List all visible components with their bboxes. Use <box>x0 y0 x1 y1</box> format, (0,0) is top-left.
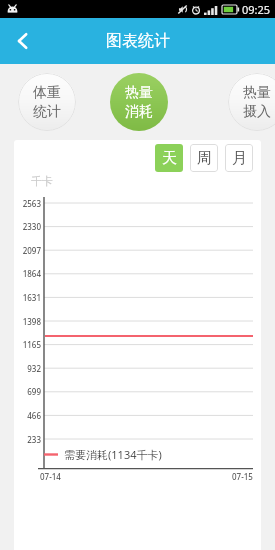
staticText: 需要消耗(1134千卡) <box>64 447 162 462</box>
staticText: 233 <box>14 434 41 445</box>
staticText: 2097 <box>14 245 41 256</box>
staticText: 699 <box>14 386 41 397</box>
staticText: 热量 <box>125 84 153 102</box>
button[interactable]: 周 <box>190 144 218 172</box>
staticText: 09:25 <box>242 2 271 17</box>
staticText: 2563 <box>14 198 41 209</box>
staticText: 消耗 <box>125 103 153 121</box>
staticText: 天 <box>162 149 177 168</box>
staticText: 932 <box>14 363 41 374</box>
button[interactable]: Back <box>0 18 46 64</box>
staticText: 热量 <box>243 84 271 102</box>
button[interactable]: 体重 <box>18 73 76 131</box>
button[interactable]: 热量 <box>228 73 275 131</box>
staticText: 2330 <box>14 221 41 232</box>
staticText: 466 <box>14 410 41 421</box>
staticText: 月 <box>232 149 247 168</box>
button[interactable]: 月 <box>225 144 253 172</box>
staticText: 1631 <box>14 292 41 303</box>
staticText: 摄入 <box>243 103 271 121</box>
staticText: 1864 <box>14 268 41 279</box>
button[interactable]: 热量 <box>110 73 168 131</box>
staticText: 图表统计 <box>106 31 170 51</box>
button[interactable]: 天 <box>155 144 183 172</box>
staticText: 1398 <box>14 316 41 327</box>
staticText: 千卡 <box>31 174 53 188</box>
staticText: 07-14 <box>40 471 61 482</box>
staticText: 统计 <box>33 103 61 121</box>
staticText: 周 <box>197 149 212 168</box>
staticText: 体重 <box>33 84 61 102</box>
staticText: 1165 <box>14 339 41 350</box>
staticText: 07-15 <box>232 471 253 482</box>
